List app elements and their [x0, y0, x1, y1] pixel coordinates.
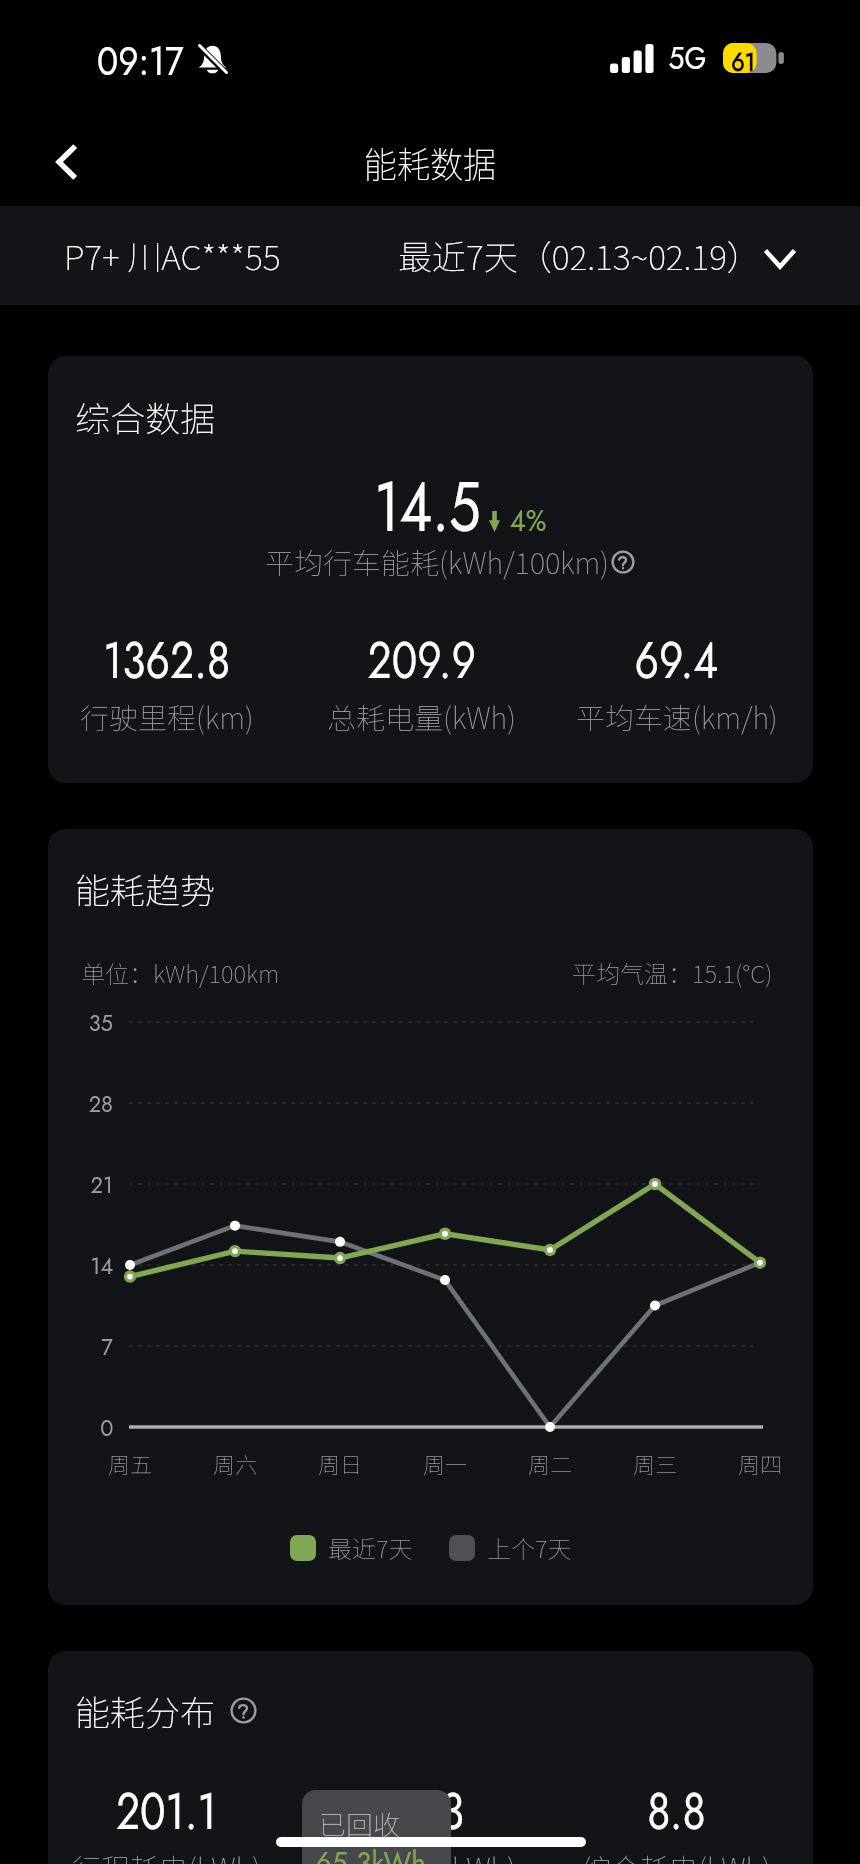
staticText: 4% — [510, 499, 547, 542]
staticText: 1362.8 — [103, 624, 231, 696]
staticText: 09:17 — [97, 31, 184, 90]
staticText: 21 — [91, 1168, 113, 1201]
button[interactable]: Back — [32, 131, 94, 193]
staticText: 平均行车能耗(kWh/100km) — [265, 540, 609, 582]
staticText: 能量回收(kWh) — [327, 1846, 516, 1864]
staticText: 能耗分布 — [75, 1685, 216, 1736]
staticText: 周日 — [318, 1447, 363, 1479]
staticText: 周六 — [213, 1447, 258, 1479]
staticText: 周二 — [528, 1447, 573, 1479]
staticText: 69.4 — [634, 624, 719, 696]
staticText: 209.9 — [368, 624, 476, 696]
staticText: 最近7天（02.13~02.19） — [398, 231, 761, 280]
staticText: 周一 — [423, 1447, 468, 1479]
staticText: 行程耗电(kWh) — [72, 1846, 261, 1864]
staticText: 平均车速(km/h) — [576, 695, 778, 737]
staticText: 单位：kWh/100km — [81, 955, 280, 990]
staticText: 14 — [91, 1249, 113, 1282]
staticText: 综合耗电(kWh) — [582, 1846, 771, 1864]
staticText: 65.3 — [379, 1775, 464, 1847]
staticText: 行驶里程(km) — [80, 695, 254, 737]
staticText: 65.3kWh — [316, 1840, 426, 1864]
staticText: 平均气温：15.1(°C) — [572, 955, 773, 990]
staticText: 能耗数据 — [364, 136, 497, 188]
staticText: 35 — [89, 1006, 113, 1039]
button[interactable]: P7+ 川AC***55 — [50, 206, 295, 305]
staticText: 14.5 — [374, 456, 481, 557]
staticText: 能耗趋势 — [75, 863, 216, 914]
staticText: 周五 — [108, 1447, 153, 1479]
staticText: 总耗电量(kWh) — [327, 695, 516, 737]
staticText: 上个7天 — [487, 1530, 572, 1565]
staticText: 5G — [669, 35, 706, 81]
staticText: 28 — [89, 1087, 113, 1120]
staticText: P7+ 川AC***55 — [64, 231, 281, 280]
staticText: 周四 — [738, 1447, 783, 1479]
staticText: 201.1 — [116, 1775, 217, 1847]
staticText: 8.8 — [647, 1775, 706, 1847]
staticText: 7 — [101, 1330, 114, 1363]
staticText: 周三 — [633, 1447, 678, 1479]
staticText: 0 — [100, 1411, 114, 1444]
button[interactable]: 最近7天（02.13~02.19） — [398, 206, 788, 305]
staticText: 已回收 — [319, 1804, 400, 1843]
staticText: 最近7天 — [328, 1530, 413, 1565]
staticText: 综合数据 — [75, 391, 216, 442]
staticText: 61 — [731, 43, 756, 73]
